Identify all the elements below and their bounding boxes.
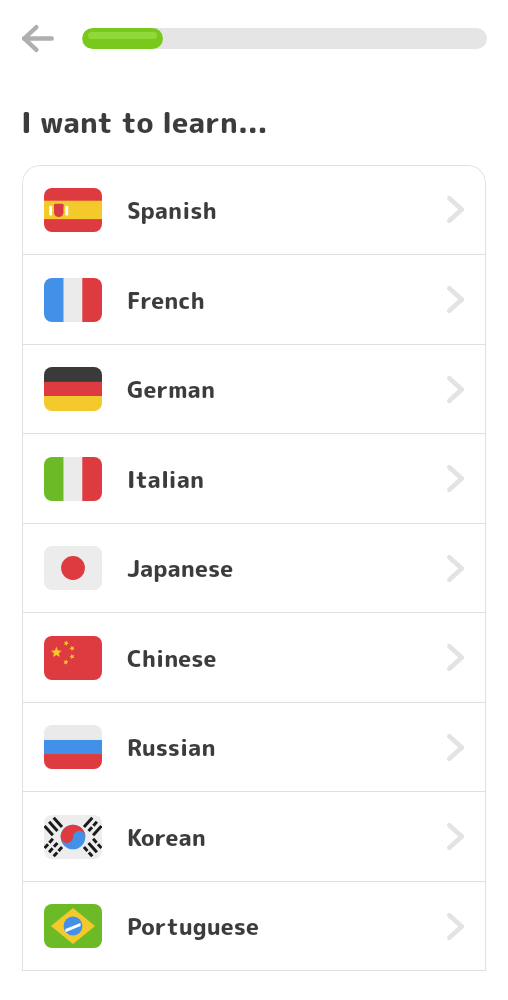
button[interactable]: French — [22, 255, 486, 344]
button[interactable]: Italian — [22, 434, 486, 523]
staticText: German — [127, 373, 216, 405]
button[interactable]: Japanese — [22, 524, 486, 612]
button[interactable]: Chinese — [22, 613, 486, 702]
staticText: Portuguese — [127, 910, 259, 942]
button[interactable]: Korean — [22, 792, 486, 881]
button[interactable]: Spanish — [22, 165, 486, 254]
staticText: Chinese — [127, 642, 217, 674]
button[interactable]: Back — [13, 13, 63, 63]
button[interactable]: German — [22, 345, 486, 433]
staticText: I want to learn... — [21, 102, 268, 142]
staticText: Korean — [127, 821, 206, 853]
button[interactable]: Portuguese — [22, 882, 486, 970]
staticText: Spanish — [127, 194, 217, 226]
staticText: French — [127, 284, 205, 316]
staticText: Russian — [127, 731, 216, 763]
staticText: Italian — [127, 463, 205, 495]
staticText: Japanese — [127, 552, 234, 584]
button[interactable]: Russian — [22, 703, 486, 791]
